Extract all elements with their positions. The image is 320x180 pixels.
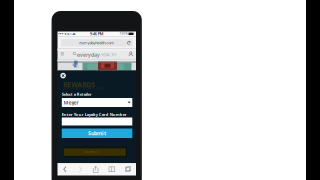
staticText: Submit [88, 130, 106, 137]
staticText: REWARDS [63, 80, 95, 89]
button[interactable]: Close [60, 73, 66, 79]
button[interactable]: Menu [60, 48, 64, 59]
staticText: Enter Your Loyalty Card Number [62, 112, 127, 117]
button[interactable]: Share [93, 163, 98, 175]
staticText: 100% [119, 32, 127, 35]
staticText: everydayhealth.com [79, 40, 114, 45]
button[interactable]: Forward [78, 163, 83, 175]
staticText: everyday [77, 51, 100, 58]
staticText: Meijer [63, 99, 78, 106]
staticText: sign up and start saving today [63, 86, 103, 90]
staticText: AT&T LTE [64, 32, 74, 36]
button[interactable]: Back [62, 163, 67, 175]
staticText: SEE OFFERS [84, 150, 96, 154]
button[interactable]: Account [129, 48, 133, 59]
button[interactable]: Reload [127, 39, 131, 46]
button[interactable]: Submit [62, 128, 132, 138]
staticText: HEALTH [101, 52, 116, 57]
staticText: Select a Retailer [62, 92, 92, 97]
button[interactable]: Tabs [125, 163, 131, 175]
staticText: 9:46 PM [90, 31, 104, 36]
button[interactable]: Bookmarks [109, 163, 115, 175]
button[interactable]: Search [73, 48, 76, 59]
button[interactable]: Meijer [62, 98, 132, 107]
